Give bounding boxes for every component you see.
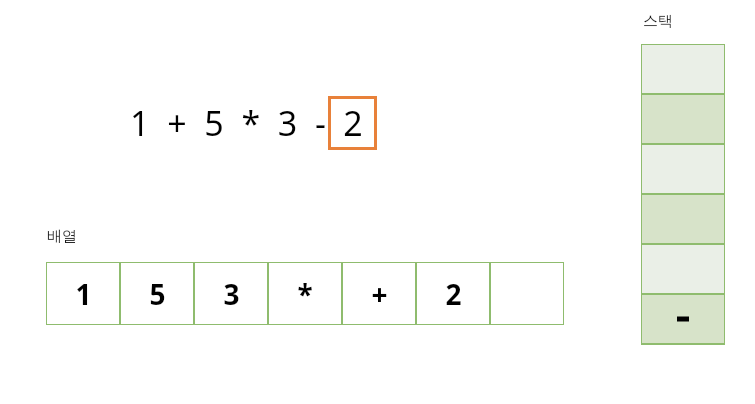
staticText: 스택 — [643, 12, 673, 31]
button[interactable] — [641, 194, 725, 244]
staticText: 2 — [343, 100, 363, 146]
button[interactable]: Minus operator — [641, 294, 725, 344]
button[interactable]: 5 — [120, 262, 194, 325]
staticText: 1 — [75, 275, 92, 313]
staticText: 5 — [149, 275, 166, 313]
other: Minus operator — [676, 312, 690, 326]
button[interactable] — [641, 44, 725, 94]
button[interactable]: + — [342, 262, 416, 325]
button[interactable]: 1 — [46, 262, 120, 325]
staticText: 3 — [223, 275, 240, 313]
staticText: + — [371, 275, 388, 313]
staticText: 2 — [445, 275, 462, 313]
button[interactable]: 1 + 5 * 3 - — [130, 96, 375, 150]
button[interactable] — [641, 94, 725, 144]
button[interactable] — [490, 262, 564, 325]
button[interactable]: 2 — [416, 262, 490, 325]
button[interactable] — [641, 144, 725, 194]
staticText: 1 + 5 * 3 - — [130, 100, 326, 146]
button[interactable]: 3 — [194, 262, 268, 325]
button[interactable] — [641, 244, 725, 294]
staticText: * — [297, 275, 313, 313]
button[interactable]: * — [268, 262, 342, 325]
button[interactable]: 2 — [328, 96, 377, 150]
staticText: 배열 — [47, 227, 77, 246]
other: Stack container — [641, 44, 725, 345]
